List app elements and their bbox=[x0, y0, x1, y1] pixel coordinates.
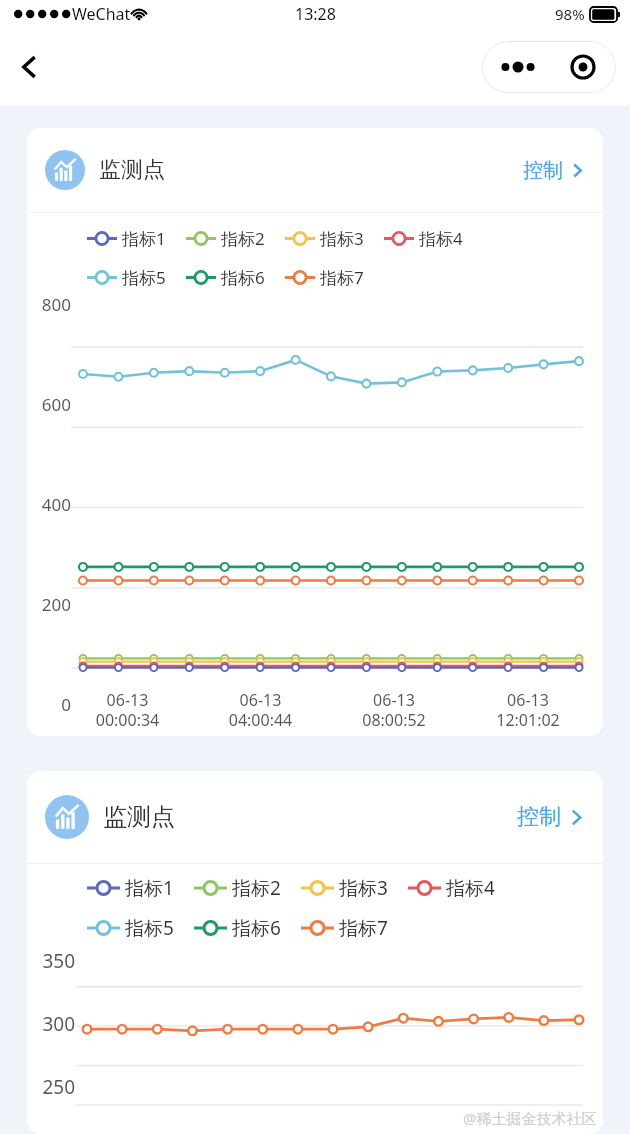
button[interactable]: Back bbox=[4, 41, 56, 93]
staticText: 指标6 bbox=[232, 915, 281, 941]
staticText: 指标4 bbox=[446, 875, 495, 901]
button[interactable]: 指标3 bbox=[285, 227, 384, 250]
staticText: @稀土掘金技术社区 bbox=[463, 1108, 597, 1128]
button[interactable]: Close bbox=[555, 41, 611, 93]
staticText: 指标2 bbox=[221, 227, 265, 250]
button[interactable]: 控制 bbox=[501, 795, 585, 839]
staticText: 0 bbox=[27, 693, 71, 716]
button[interactable]: 指标2 bbox=[194, 875, 301, 901]
staticText: 指标1 bbox=[122, 227, 166, 250]
button[interactable]: 指标5 bbox=[87, 915, 194, 941]
staticText: 06-13 04:00:44 bbox=[194, 689, 327, 730]
staticText: 控制 bbox=[523, 158, 563, 183]
button[interactable]: 监测点 bbox=[27, 128, 603, 736]
button[interactable]: 指标3 bbox=[301, 875, 408, 901]
button[interactable]: 指标7 bbox=[285, 266, 384, 289]
staticText: 指标7 bbox=[320, 266, 364, 289]
staticText: 250 bbox=[27, 1074, 75, 1100]
staticText: 13:28 bbox=[295, 3, 336, 25]
staticText: 控制 bbox=[517, 803, 561, 831]
staticText: 98% bbox=[555, 4, 585, 24]
button[interactable]: 监测点 bbox=[27, 771, 603, 1134]
staticText: 监测点 bbox=[99, 156, 165, 184]
staticText: 指标6 bbox=[221, 266, 265, 289]
button[interactable]: 指标1 bbox=[87, 875, 194, 901]
staticText: 指标2 bbox=[232, 875, 281, 901]
staticText: 400 bbox=[27, 493, 71, 516]
staticText: 800 bbox=[27, 293, 71, 316]
button[interactable]: 控制 bbox=[507, 150, 585, 191]
button[interactable]: 指标1 bbox=[87, 227, 186, 250]
staticText: 指标3 bbox=[320, 227, 364, 250]
button[interactable]: 指标6 bbox=[194, 915, 301, 941]
staticText: 06-13 08:00:52 bbox=[327, 689, 461, 730]
staticText: 指标5 bbox=[122, 266, 166, 289]
button[interactable]: 指标7 bbox=[301, 915, 408, 941]
button[interactable]: More options bbox=[487, 41, 549, 93]
staticText: 指标4 bbox=[419, 227, 463, 250]
staticText: 06-13 00:00:34 bbox=[61, 689, 194, 730]
staticText: 监测点 bbox=[103, 802, 175, 832]
staticText: 指标1 bbox=[125, 875, 174, 901]
staticText: 350 bbox=[27, 948, 75, 974]
button[interactable]: 指标6 bbox=[186, 266, 285, 289]
staticText: 06-13 12:01:02 bbox=[461, 689, 595, 730]
button[interactable]: 指标5 bbox=[87, 266, 186, 289]
button[interactable]: 指标4 bbox=[384, 227, 483, 250]
staticText: WeChat bbox=[72, 3, 131, 25]
staticText: 指标5 bbox=[125, 915, 174, 941]
staticText: 300 bbox=[27, 1011, 75, 1037]
staticText: 200 bbox=[27, 593, 71, 616]
button[interactable]: 指标4 bbox=[408, 875, 515, 901]
staticText: 600 bbox=[27, 393, 71, 416]
button[interactable]: 指标2 bbox=[186, 227, 285, 250]
staticText: 指标3 bbox=[339, 875, 388, 901]
staticText: 指标7 bbox=[339, 915, 388, 941]
